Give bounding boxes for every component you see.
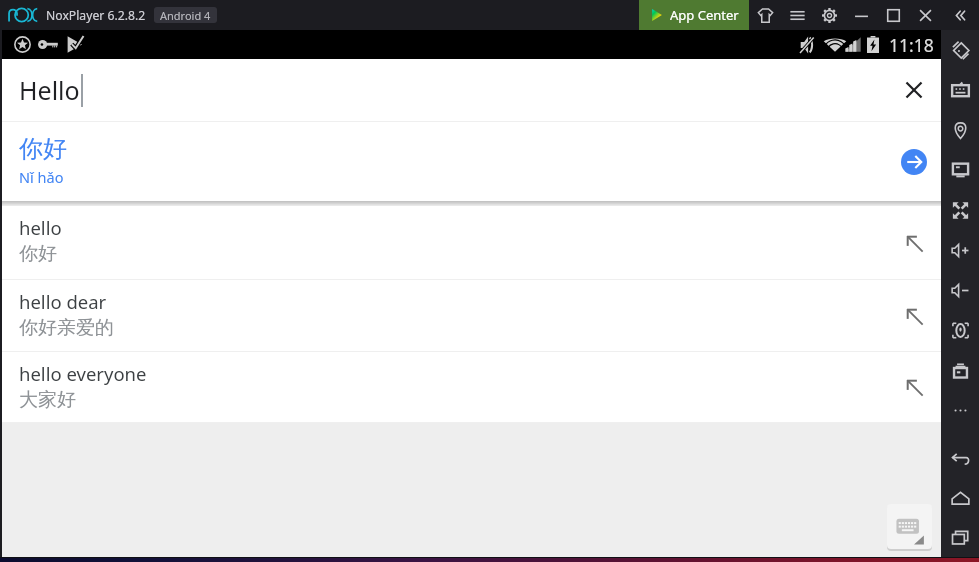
button[interactable]: Back — [941, 438, 979, 478]
button[interactable]: Translate — [896, 144, 932, 180]
staticText: 你好 — [19, 134, 67, 164]
button[interactable]: Menu — [781, 0, 813, 30]
staticText: Hello — [19, 73, 80, 107]
button[interactable]: Insert suggestion — [896, 225, 932, 261]
button[interactable]: Clear text — [896, 72, 932, 108]
staticText: hello everyone — [19, 361, 147, 386]
staticText: hello dear — [19, 289, 107, 314]
button[interactable]: 你好 — [2, 122, 941, 201]
button[interactable]: Fullscreen — [941, 190, 979, 230]
button[interactable]: Insert suggestion — [896, 369, 932, 405]
button[interactable]: Location — [941, 110, 979, 150]
button[interactable]: hello — [2, 206, 941, 279]
staticText: 11:18 — [889, 33, 934, 57]
staticText: Android 4 — [160, 8, 211, 23]
button[interactable]: Volume up — [941, 230, 979, 270]
button[interactable]: More — [941, 390, 979, 430]
staticText: NoxPlayer 6.2.8.2 — [46, 7, 146, 24]
staticText: 你好 — [19, 242, 57, 266]
button[interactable]: Show keyboard — [887, 504, 932, 549]
staticText: 你好亲爱的 — [19, 316, 114, 340]
button[interactable]: Recents — [941, 518, 979, 557]
button[interactable]: Hello — [2, 59, 941, 121]
button[interactable]: App Center — [639, 0, 749, 30]
button[interactable]: Minimize — [845, 0, 877, 30]
button[interactable]: Home — [941, 478, 979, 518]
button[interactable]: Shared folder — [941, 350, 979, 390]
button[interactable]: hello everyone — [2, 352, 941, 422]
button[interactable]: Close — [909, 0, 941, 30]
button[interactable]: Theme — [749, 0, 781, 30]
button[interactable]: Screenshot — [941, 310, 979, 350]
staticText: Nǐ hǎo — [19, 167, 64, 187]
button[interactable]: Volume down — [941, 270, 979, 310]
button[interactable]: Settings — [813, 0, 845, 30]
button[interactable]: Virtual keyboard — [941, 70, 979, 110]
staticText: hello — [19, 215, 62, 240]
button[interactable]: Insert suggestion — [896, 298, 932, 334]
staticText: 大家好 — [19, 388, 76, 412]
button[interactable]: Screen recording — [941, 150, 979, 190]
button[interactable]: Maximize — [877, 0, 909, 30]
button[interactable]: Shake — [941, 30, 979, 70]
staticText: App Center — [670, 6, 739, 24]
button[interactable]: Collapse toolbar — [941, 0, 979, 30]
button[interactable]: hello dear — [2, 280, 941, 351]
